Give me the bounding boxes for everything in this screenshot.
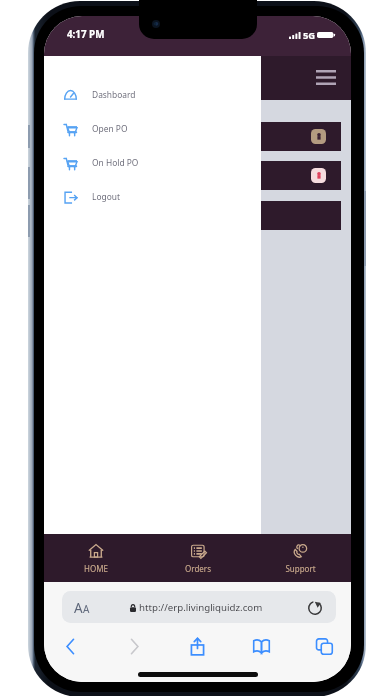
- staticText: http://erp.livingliquidz.com: [139, 601, 263, 614]
- staticText: On Hold PO: [92, 157, 139, 168]
- button[interactable]: Support: [249, 534, 351, 582]
- staticText: 5G: [303, 29, 316, 42]
- button[interactable]: Reload: [303, 595, 327, 619]
- button[interactable]: HOME: [44, 534, 147, 582]
- staticText: HOME: [84, 563, 108, 574]
- button[interactable]: Bookmarks: [249, 634, 273, 658]
- staticText: A: [74, 599, 83, 617]
- button[interactable]: [54, 201, 341, 230]
- staticText: Logout: [92, 191, 120, 202]
- button[interactable]: On Hold PO: [44, 145, 261, 179]
- button[interactable]: Orders: [147, 534, 249, 582]
- button[interactable]: Dashboard: [44, 77, 261, 111]
- button[interactable]: Logout: [44, 179, 261, 213]
- button[interactable]: Back: [58, 634, 82, 658]
- button[interactable]: Forward: [122, 634, 146, 658]
- button[interactable]: Share: [185, 634, 209, 658]
- button[interactable]: Menu: [311, 63, 341, 92]
- button[interactable]: [54, 161, 341, 190]
- button[interactable]: [54, 122, 341, 151]
- staticText: Support: [285, 563, 316, 574]
- staticText: Orders: [185, 563, 211, 574]
- staticText: Open PO: [92, 123, 128, 134]
- button[interactable]: Open PO: [44, 111, 261, 145]
- staticText: A: [83, 602, 90, 616]
- staticText: Dashboard: [92, 89, 136, 100]
- staticText: 4:17 PM: [67, 28, 105, 41]
- button[interactable]: Tabs: [312, 634, 336, 658]
- button[interactable]: A: [62, 591, 336, 623]
